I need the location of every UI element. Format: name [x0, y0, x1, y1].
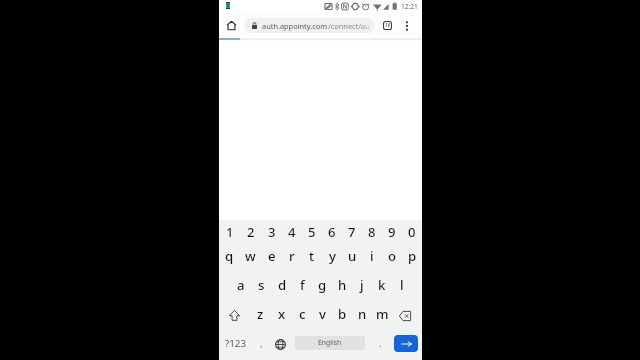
- staticText: 3: [268, 223, 276, 241]
- button[interactable]: w: [240, 246, 261, 275]
- staticText: b: [338, 305, 347, 323]
- staticText: 0: [408, 223, 416, 241]
- button[interactable]: z: [250, 304, 271, 333]
- staticText: m: [376, 305, 389, 323]
- button[interactable]: ,: [251, 333, 271, 360]
- staticText: l: [400, 276, 404, 294]
- staticText: 2: [247, 223, 255, 241]
- staticText: s: [258, 276, 265, 294]
- button[interactable]: m: [372, 304, 392, 333]
- staticText: g: [318, 276, 327, 294]
- button[interactable]: y: [322, 246, 342, 275]
- staticText: k: [378, 276, 386, 294]
- button[interactable]: e: [261, 246, 282, 275]
- button[interactable]: h: [332, 275, 352, 304]
- button[interactable]: l: [392, 275, 412, 304]
- staticText: 9: [388, 223, 396, 241]
- button[interactable]: 2: [240, 220, 261, 246]
- button[interactable]: 4: [282, 220, 302, 246]
- button[interactable]: i: [362, 246, 382, 275]
- button[interactable]: f: [292, 275, 312, 304]
- staticText: 18: [385, 22, 391, 29]
- staticText: q: [225, 247, 234, 265]
- staticText: h: [338, 276, 347, 294]
- staticText: j: [360, 276, 364, 294]
- staticText: n: [358, 305, 367, 323]
- staticText: u: [348, 247, 357, 265]
- staticText: 8: [368, 223, 376, 241]
- staticText: a: [237, 276, 245, 294]
- staticText: i: [370, 247, 374, 265]
- button[interactable]: a: [230, 275, 251, 304]
- button[interactable]: d: [272, 275, 292, 304]
- button[interactable]: Tabs: [377, 15, 397, 35]
- staticText: 1: [226, 223, 234, 241]
- staticText: 7: [348, 223, 356, 241]
- staticText: z: [257, 305, 264, 323]
- button[interactable]: v: [312, 304, 332, 333]
- button[interactable]: auth.appointy.com: [244, 18, 375, 33]
- staticText: x: [278, 305, 286, 323]
- button[interactable]: j: [352, 275, 372, 304]
- staticText: e: [268, 247, 276, 265]
- button[interactable]: 5: [302, 220, 322, 246]
- button[interactable]: Enter: [394, 335, 418, 352]
- button[interactable]: o: [382, 246, 402, 275]
- button[interactable]: k: [372, 275, 392, 304]
- staticText: ,: [260, 337, 263, 350]
- button[interactable]: s: [251, 275, 272, 304]
- button[interactable]: q: [219, 246, 240, 275]
- staticText: y: [329, 247, 336, 265]
- button[interactable]: n: [352, 304, 372, 333]
- button[interactable]: x: [271, 304, 292, 333]
- button[interactable]: ?123: [219, 333, 252, 360]
- staticText: c: [299, 305, 306, 323]
- staticText: v: [319, 305, 326, 323]
- staticText: 6: [328, 223, 336, 241]
- staticText: 4: [288, 223, 296, 241]
- button[interactable]: 8: [362, 220, 382, 246]
- staticText: 12:21: [401, 2, 418, 11]
- button[interactable]: u: [342, 246, 362, 275]
- button[interactable]: p: [402, 246, 422, 275]
- staticText: .: [379, 337, 382, 350]
- staticText: /connect/au: [328, 21, 370, 31]
- staticText: p: [408, 247, 417, 265]
- button[interactable]: Backspace: [392, 304, 422, 333]
- button[interactable]: .: [371, 333, 389, 360]
- button[interactable]: 0: [402, 220, 422, 246]
- button[interactable]: b: [332, 304, 352, 333]
- button[interactable]: Home: [220, 15, 242, 37]
- staticText: English: [318, 338, 342, 347]
- button[interactable]: 6: [322, 220, 342, 246]
- button[interactable]: g: [312, 275, 332, 304]
- staticText: o: [388, 247, 397, 265]
- staticText: auth.appointy.com: [262, 21, 328, 31]
- button[interactable]: 9: [382, 220, 402, 246]
- staticText: w: [245, 247, 256, 265]
- staticText: 5: [308, 223, 316, 241]
- staticText: r: [289, 247, 295, 265]
- button[interactable]: Shift: [219, 304, 250, 333]
- button[interactable]: 3: [261, 220, 282, 246]
- staticText: ?123: [225, 337, 247, 350]
- staticText: t: [309, 247, 315, 265]
- button[interactable]: 1: [219, 220, 240, 246]
- staticText: f: [300, 276, 305, 294]
- button[interactable]: c: [292, 304, 312, 333]
- button[interactable]: Change keyboard language: [271, 333, 291, 360]
- button[interactable]: More options: [397, 16, 417, 36]
- button[interactable]: English: [295, 336, 365, 350]
- staticText: d: [278, 276, 287, 294]
- button[interactable]: 7: [342, 220, 362, 246]
- button[interactable]: r: [282, 246, 302, 275]
- button[interactable]: t: [302, 246, 322, 275]
